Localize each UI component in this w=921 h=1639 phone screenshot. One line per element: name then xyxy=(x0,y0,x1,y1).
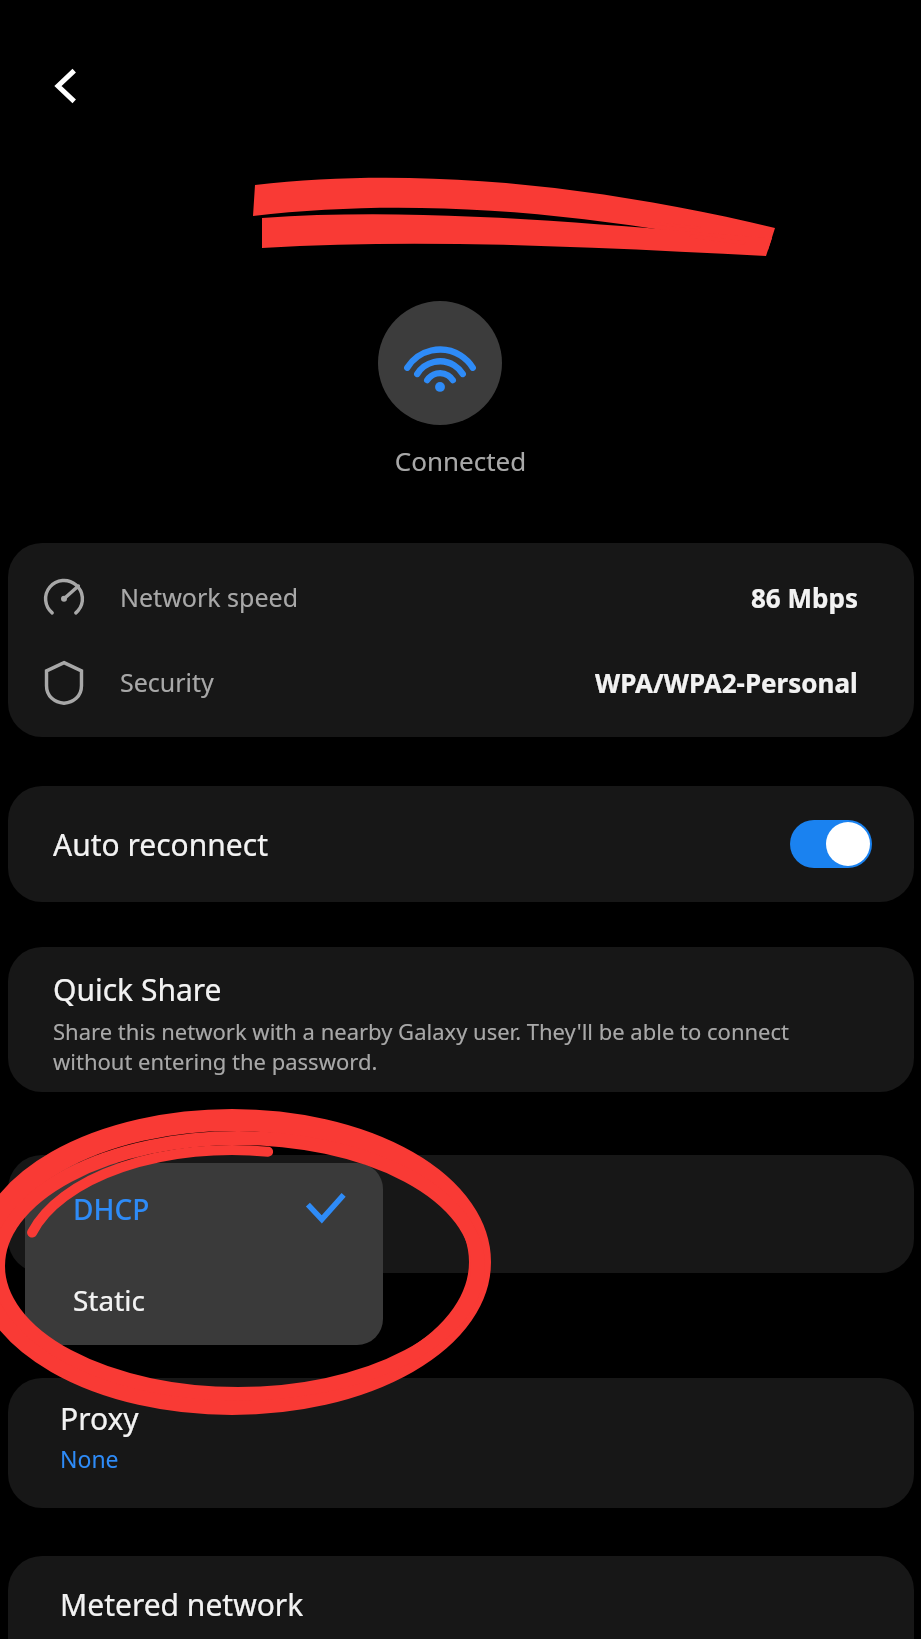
staticText: Network speed xyxy=(120,580,299,614)
staticText: 86 Mbps xyxy=(751,580,858,615)
button[interactable]: Auto reconnect toggle xyxy=(790,820,872,868)
button[interactable]: Network speed xyxy=(8,557,914,637)
staticText: Quick Share xyxy=(53,969,222,1010)
staticText: Auto reconnect xyxy=(53,824,268,865)
staticText: Metered network xyxy=(60,1584,304,1625)
button[interactable]: Metered network xyxy=(8,1556,914,1639)
button[interactable]: Proxy xyxy=(8,1378,914,1508)
button[interactable]: Quick Share xyxy=(8,947,914,1092)
staticText: Share this network with a nearby Galaxy … xyxy=(53,1016,869,1076)
button[interactable]: Static xyxy=(25,1254,383,1345)
staticText: DHCP xyxy=(73,1190,150,1228)
staticText: Connected xyxy=(0,443,921,478)
staticText: Static xyxy=(73,1281,145,1319)
staticText: Proxy xyxy=(60,1398,139,1439)
staticText: None xyxy=(60,1443,119,1474)
button[interactable]: DHCP xyxy=(25,1163,383,1254)
button[interactable]: Security xyxy=(8,641,914,723)
staticText: WPA/WPA2-Personal xyxy=(595,665,858,700)
staticText: Security xyxy=(120,665,214,699)
button[interactable]: Back xyxy=(30,50,102,122)
button[interactable]: Auto reconnect xyxy=(8,786,914,902)
